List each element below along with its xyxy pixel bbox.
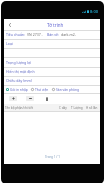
button[interactable]: Chiều dày (mm) <box>4 76 100 84</box>
staticText: T Lượng <box>71 106 86 110</box>
staticText: C dày <box>59 106 71 110</box>
button[interactable]: Add <box>9 96 17 101</box>
staticText: Loại <box>6 41 13 46</box>
staticText: Trang 1 / 1 <box>45 155 60 159</box>
staticText: Tên bộ phận/chi tiết <box>5 106 59 110</box>
staticText: Hiển thị mặt định <box>6 69 35 74</box>
staticText: Sản văn phòng <box>56 87 80 91</box>
button[interactable]: Sản văn phòng <box>52 87 80 91</box>
staticText: Trọng lượng lợi <box>6 60 32 65</box>
button[interactable]: Hiển thị mặt định <box>4 67 100 75</box>
button[interactable]: Delete <box>43 96 51 101</box>
button[interactable]: Trọng lượng lợi <box>4 58 100 66</box>
staticText: Gói in nhập <box>10 87 28 91</box>
staticText: Chiều dày (mm) <box>6 78 32 83</box>
staticText: Tiêu chuẩn: <box>6 32 25 37</box>
staticText: dark-m2- <box>61 32 76 37</box>
button[interactable]: Remove <box>26 96 34 101</box>
staticText: H số lần <box>86 106 99 110</box>
staticText: VN 2737 - <box>27 32 43 37</box>
staticText: Bản vẽ: <box>47 32 60 37</box>
button[interactable]: Loại <box>4 39 100 47</box>
button[interactable]: Gói in nhập <box>6 87 28 91</box>
staticText: Thư viện <box>35 87 49 91</box>
button[interactable]: Thư viện <box>31 87 49 91</box>
button[interactable]: Tiêu chuẩn: <box>4 30 100 38</box>
staticText: 8:00 <box>90 9 98 14</box>
staticText: Tờ trình <box>47 22 64 28</box>
button[interactable]: Back <box>4 19 16 30</box>
